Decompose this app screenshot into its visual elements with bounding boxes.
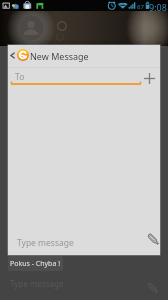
- staticText: New Message: [30, 50, 89, 62]
- staticText: Type message: [10, 278, 64, 289]
- staticText: 9:08: [149, 1, 167, 12]
- staticText: Type message: [17, 237, 74, 249]
- button[interactable]: New Message: [8, 45, 160, 67]
- button[interactable]: Add recipient: [141, 70, 157, 86]
- staticText: Pokus - Chyba !: [10, 259, 61, 269]
- staticText: To: [15, 71, 25, 83]
- button[interactable]: Attach file: [146, 232, 160, 246]
- button[interactable]: Type message: [8, 229, 160, 255]
- button[interactable]: Attach file: [146, 281, 159, 294]
- button[interactable]: To: [8, 68, 160, 87]
- staticText: 67: [137, 3, 144, 11]
